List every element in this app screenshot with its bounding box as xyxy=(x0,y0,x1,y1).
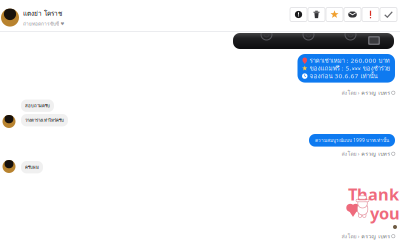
staticText: › xyxy=(358,89,360,96)
staticText: สอบถามครับ xyxy=(25,102,50,109)
staticText: ส่งโดย xyxy=(341,88,356,97)
button[interactable]: Report xyxy=(362,7,379,21)
staticText: จองก่อน 30.6.67 เท่านั้น xyxy=(309,71,377,81)
staticText: › xyxy=(358,233,360,240)
staticText: › xyxy=(358,150,360,157)
button[interactable]: แตงย่า โคราช xyxy=(1,8,64,27)
staticText: ความสมบูรณ์แบบ 1999 บาทเท่านั้น xyxy=(315,137,389,144)
staticText: ♥ xyxy=(60,21,64,26)
staticText: วางตารางเท่าไหร่ครับ xyxy=(25,117,64,124)
staticText: ส่งโดย xyxy=(341,149,356,158)
staticText: Thank xyxy=(348,183,399,205)
button[interactable]: Info xyxy=(290,7,307,21)
staticText: ถ่ายทอดการขับขี่ xyxy=(23,20,59,28)
staticText: ของแถมฟรี : 5,xxx ของชำร่วย xyxy=(309,63,390,73)
button[interactable]: Star xyxy=(326,7,343,21)
staticText: แตงย่า โคราช xyxy=(23,8,62,19)
staticText: ราคาเช่าเหมา : 260,000 บาท xyxy=(309,56,389,65)
button[interactable]: Delete xyxy=(308,7,325,21)
button[interactable]: Mark unread xyxy=(344,7,361,21)
staticText: ส่งโดย xyxy=(341,232,356,240)
staticText: ครวญ เบทร xyxy=(361,88,390,97)
staticText: ครวญ เบทร xyxy=(361,149,390,158)
staticText: you xyxy=(370,202,400,224)
staticText: ครวญ เบทร xyxy=(361,232,390,240)
button[interactable]: Done xyxy=(380,7,397,21)
staticText: ครับผม xyxy=(25,164,39,171)
